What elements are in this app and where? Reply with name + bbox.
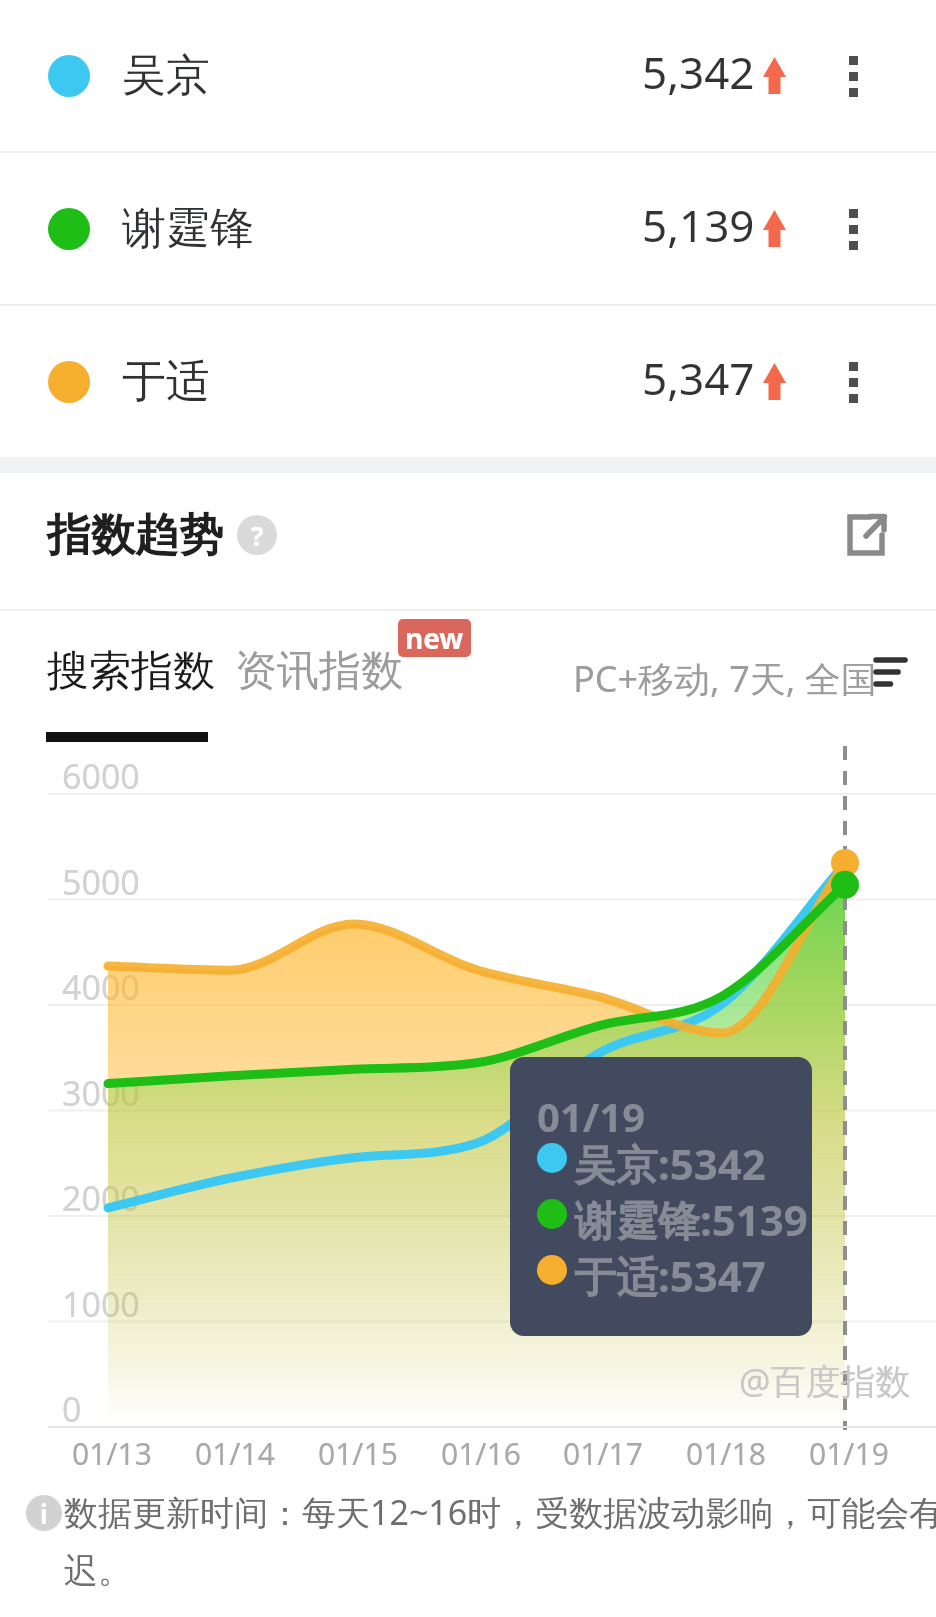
staticText: 1000 (62, 1281, 140, 1327)
staticText: 数据更新时间：每天12~16时，受数据波动影响，可能会有延迟。 (64, 1489, 936, 1592)
button[interactable]: 谢霆锋 (0, 153, 936, 304)
staticText: new (405, 619, 464, 657)
staticText: 吴京 (122, 48, 210, 103)
button[interactable]: More options (827, 203, 879, 255)
staticText: 搜索指数 (47, 645, 215, 698)
button[interactable]: 资讯指数 (235, 645, 403, 698)
staticText: 2000 (62, 1175, 140, 1221)
button[interactable]: Open in new window (834, 504, 896, 566)
staticText: 01/14 (195, 1433, 275, 1474)
staticText: 于适:5347 (574, 1247, 766, 1304)
staticText: 于适 (122, 354, 210, 409)
staticText: 5,347 (642, 348, 755, 408)
button[interactable]: More options (827, 356, 879, 408)
staticText: 6000 (62, 753, 140, 799)
staticText: 谢霆锋:5139 (574, 1191, 808, 1248)
staticText: 01/17 (563, 1433, 643, 1474)
staticText: 01/13 (72, 1433, 152, 1474)
staticText: 5000 (62, 859, 140, 905)
staticText: @百度指数 (739, 1357, 911, 1405)
staticText: 吴京:5342 (574, 1135, 766, 1192)
staticText: 01/18 (686, 1433, 766, 1474)
button[interactable]: 搜索指数 (47, 645, 215, 698)
button[interactable]: 吴京 (0, 0, 936, 151)
staticText: 5,342 (642, 42, 755, 102)
staticText: 01/19 (537, 1089, 646, 1143)
button[interactable]: Filter options (568, 651, 872, 700)
staticText: 资讯指数 (235, 645, 403, 698)
button[interactable]: More options (827, 50, 879, 102)
button[interactable]: 于适 (0, 306, 936, 457)
staticText: PC+移动, 7天, 全国 (573, 654, 877, 703)
staticText: 指数趋势 (47, 508, 223, 563)
staticText: ? (251, 518, 264, 553)
staticText: 01/15 (318, 1433, 398, 1474)
staticText: 3000 (62, 1070, 140, 1116)
staticText: i (40, 1496, 48, 1531)
staticText: 4000 (62, 964, 140, 1010)
staticText: 5,139 (642, 195, 755, 255)
button[interactable]: Help (237, 515, 277, 555)
staticText: 谢霆锋 (122, 201, 254, 256)
staticText: 0 (62, 1386, 82, 1432)
staticText: 01/19 (809, 1433, 889, 1474)
staticText: 01/16 (441, 1433, 521, 1474)
